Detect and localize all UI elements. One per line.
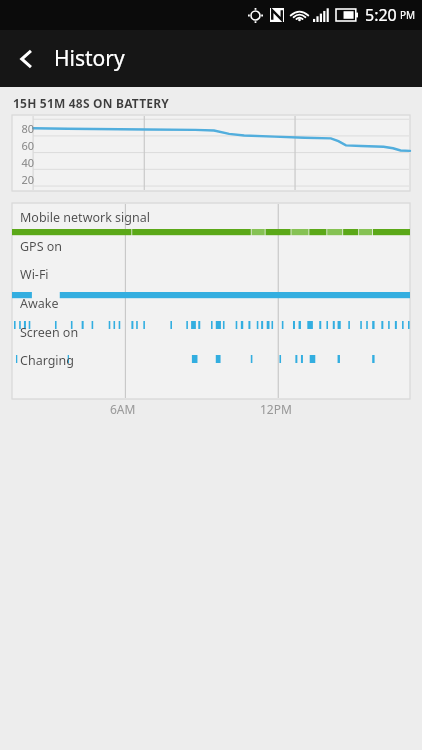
staticText: 15H 51M 48S ON BATTERY <box>13 95 170 111</box>
staticText: Awake <box>20 295 59 311</box>
staticText: 80 <box>21 121 34 136</box>
staticText: 60 <box>21 138 34 153</box>
button[interactable]: Back <box>0 32 54 86</box>
staticText: PM <box>400 8 416 22</box>
staticText: Charging <box>20 352 75 368</box>
staticText: 5:20 <box>365 4 397 26</box>
staticText: Mobile network signal <box>20 209 150 225</box>
staticText: 40 <box>21 155 34 170</box>
staticText: 12PM <box>260 401 292 417</box>
staticText: GPS on <box>20 238 63 254</box>
staticText: Wi-Fi <box>20 266 49 282</box>
staticText: Screen on <box>20 324 79 340</box>
staticText: 20 <box>21 172 34 187</box>
staticText: History <box>54 44 125 73</box>
staticText: 6AM <box>110 401 136 417</box>
